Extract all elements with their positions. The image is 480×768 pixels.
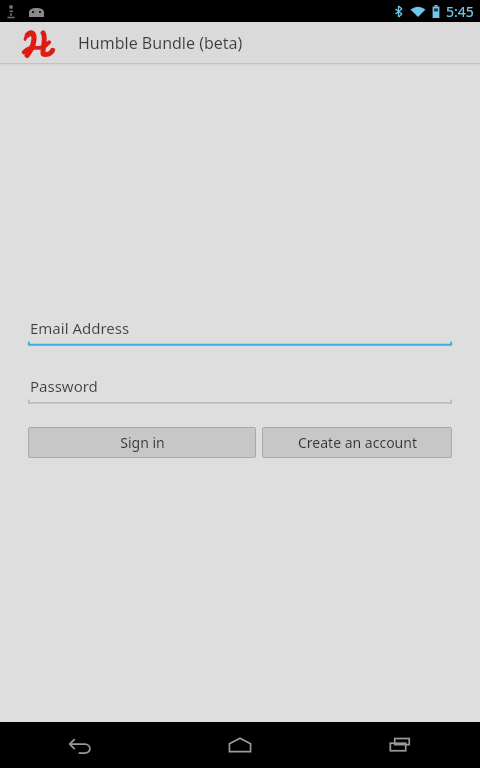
staticText: Sign in [120, 433, 165, 452]
staticText: Create an account [298, 433, 417, 452]
button[interactable]: Create an account [262, 427, 452, 458]
button[interactable]: Home [212, 722, 268, 768]
button[interactable]: Password [28, 372, 452, 404]
staticText: Email Address [30, 318, 130, 338]
staticText: Password [30, 376, 98, 396]
button[interactable]: Back [52, 722, 108, 768]
button[interactable]: Email Address [28, 314, 452, 346]
staticText: Humble Bundle (beta) [78, 32, 243, 54]
staticText: 5:45 [446, 2, 474, 21]
button[interactable]: Recent apps [372, 722, 428, 768]
other: Humble Bundle logo [22, 25, 56, 61]
button[interactable]: Sign in [28, 427, 256, 458]
